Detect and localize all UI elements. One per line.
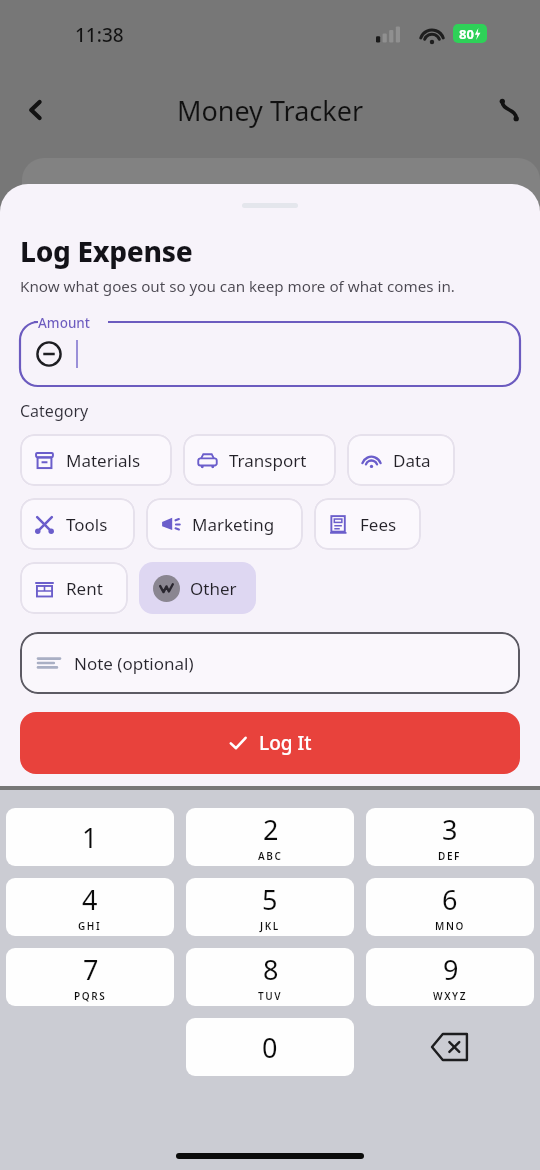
staticText: ABC [258,849,283,863]
staticText: 0 [262,1029,278,1066]
staticText: Marketing [192,513,275,536]
staticText: Data [393,449,431,472]
staticText: 6 [442,881,458,918]
button[interactable]: Data [347,434,455,486]
button[interactable]: Fees [314,498,421,550]
staticText: GHI [78,919,102,933]
staticText: DEF [438,849,462,863]
staticText: Tools [66,513,108,536]
staticText: Category [20,400,89,422]
staticText: PQRS [74,989,107,1003]
staticText: WXYZ [433,989,468,1003]
staticText: MNO [435,919,465,933]
staticText: 3 [442,811,458,848]
button[interactable]: 5 [186,878,354,936]
staticText: 80 [459,25,474,43]
button[interactable]: Materials [20,434,172,486]
staticText: Money Tracker [0,92,540,129]
button[interactable]: 3 [366,808,534,866]
button[interactable]: 2 [186,808,354,866]
staticText: Amount [38,314,90,332]
staticText: 1 [82,819,98,856]
staticText: Log Expense [20,232,193,270]
button[interactable]: 6 [366,878,534,936]
button[interactable]: 7 [6,948,174,1006]
staticText: 4 [82,881,98,918]
staticText: JKL [260,919,280,933]
button[interactable]: Log It [20,712,520,774]
button[interactable]: 0 [186,1018,354,1076]
button[interactable]: Note (optional) [20,632,520,694]
button[interactable]: Rent [20,562,128,614]
staticText: Other [190,577,237,600]
staticText: 2 [263,811,279,848]
button[interactable]: Transfer [487,88,531,132]
staticText: Materials [66,449,141,472]
staticText: 9 [443,951,459,988]
button[interactable]: 4 [6,878,174,936]
button[interactable]: Delete [366,1018,534,1076]
staticText: Note (optional) [74,652,194,675]
button[interactable]: Tools [20,498,135,550]
staticText: Know what goes out so you can keep more … [20,276,455,297]
button[interactable]: 1 [6,808,174,866]
staticText: 7 [83,951,99,988]
staticText: Rent [66,577,103,600]
staticText: Transport [229,449,307,472]
staticText: 5 [262,881,278,918]
button[interactable]: Marketing [146,498,303,550]
button[interactable]: Other [139,562,256,614]
staticText: TUV [258,989,283,1003]
staticText: Fees [360,513,397,536]
button[interactable]: Transport [183,434,336,486]
button[interactable]: Back [14,88,58,132]
button[interactable]: 8 [186,948,354,1006]
button[interactable]: 9 [366,948,534,1006]
staticText: 8 [263,951,279,988]
staticText: Log It [259,730,312,756]
staticText: 11:38 [75,22,124,48]
